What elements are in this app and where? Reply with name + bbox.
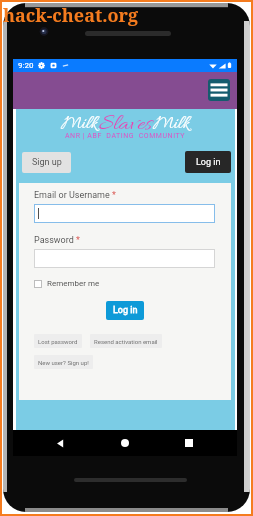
staticText: * <box>76 235 80 246</box>
staticText: * <box>112 190 116 201</box>
button[interactable]: Remember me <box>34 279 100 288</box>
button[interactable]: Open navigation menu <box>208 79 230 101</box>
staticText: Log in <box>196 157 221 168</box>
button[interactable]: Log in <box>106 301 144 320</box>
staticText: ANR | ABF DATING COMMUNITY <box>65 132 186 140</box>
staticText: Milk <box>61 113 98 137</box>
button[interactable]: Sign up <box>22 152 71 173</box>
button[interactable]: New user? Sign up! <box>34 355 93 369</box>
button[interactable]: Back <box>50 433 70 453</box>
staticText: Slaves <box>99 110 152 140</box>
staticText: Remember me <box>47 279 100 288</box>
staticText: Lost password <box>38 338 78 345</box>
staticText: Sign up <box>32 157 62 168</box>
staticText: Password <box>34 235 74 246</box>
staticText: Log in <box>113 305 138 316</box>
button[interactable]: Resend activation email <box>90 334 162 348</box>
staticText: New user? Sign up! <box>38 359 89 366</box>
staticText: 9:20 <box>18 61 34 70</box>
button[interactable] <box>34 249 215 268</box>
staticText: Resend activation email <box>94 338 158 345</box>
staticText: Milk <box>153 113 190 137</box>
staticText: Email or Username <box>34 190 110 201</box>
button[interactable]: Recent apps <box>179 433 199 453</box>
button[interactable]: Lost password <box>34 334 82 348</box>
staticText: hack-cheat.org <box>3 3 139 28</box>
button[interactable]: Home <box>115 433 135 453</box>
button[interactable]: Log in <box>185 151 231 173</box>
button[interactable] <box>34 204 215 223</box>
